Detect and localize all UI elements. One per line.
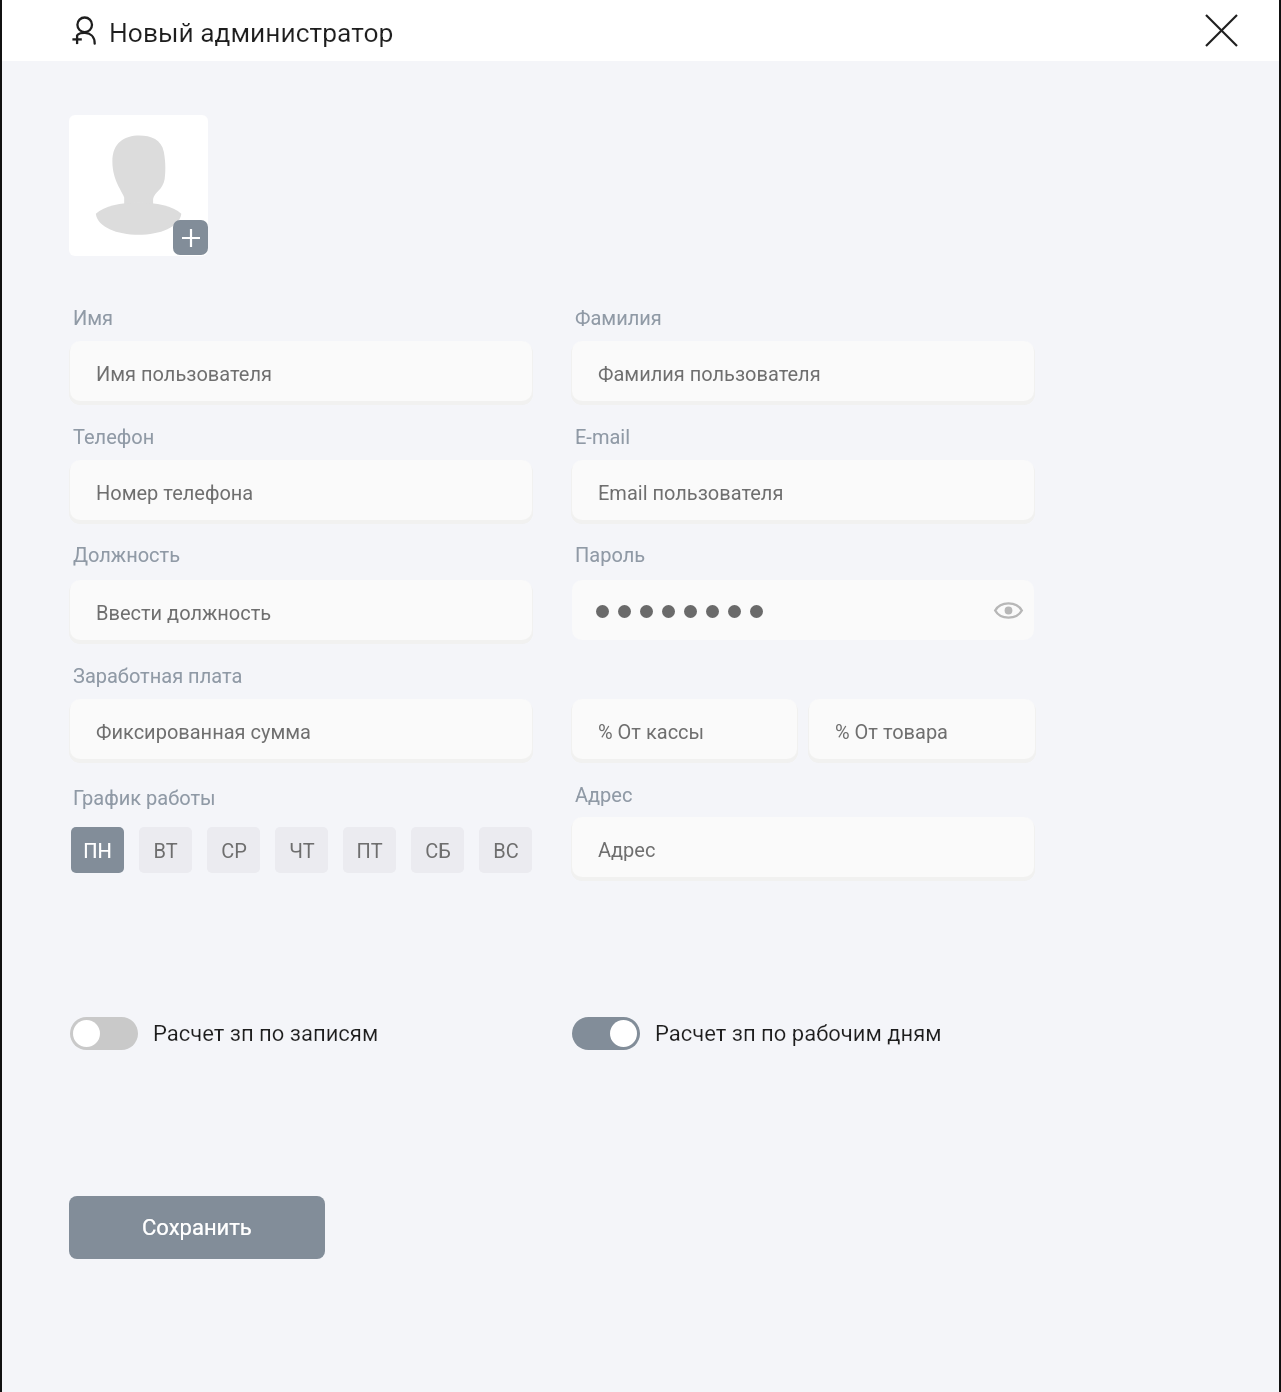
button[interactable]: Расчет зп по рабочим дням [572,1017,942,1050]
button[interactable]: Номер телефона [70,460,532,520]
staticText: Сохранить [142,1215,252,1241]
button[interactable]: % От кассы [572,699,797,759]
staticText: Должность [73,543,181,566]
staticText: СБ [425,839,451,862]
staticText: ВС [493,839,519,862]
staticText: Фамилия [575,306,662,329]
button[interactable]: СБ [411,827,464,873]
staticText: ПН [83,839,112,862]
staticText: Телефон [73,425,155,448]
staticText: % От кассы [598,720,705,743]
staticText: Email пользователя [598,481,784,504]
staticText: Фамилия пользователя [598,362,821,385]
button[interactable]: Адрес [572,817,1034,877]
staticText: E-mail [575,425,631,448]
staticText: СР [221,839,247,862]
staticText: Ввести должность [96,601,272,624]
staticText: Имя [73,306,114,329]
button[interactable]: ПТ [343,827,396,873]
staticText: Заработная плата [73,664,243,687]
staticText: График работы [73,786,216,809]
button[interactable]: Ввести должность [70,580,532,640]
button[interactable]: Email пользователя [572,460,1034,520]
staticText: ПТ [356,839,383,862]
staticText: Адрес [575,783,633,806]
button[interactable]: ПН [71,827,124,873]
button[interactable]: ЧТ [275,827,328,873]
button[interactable]: ВТ [139,827,192,873]
staticText: Адрес [598,838,656,861]
button[interactable]: Фиксированная сумма [70,699,532,759]
button[interactable]: Close [1196,5,1247,56]
button[interactable]: СР [207,827,260,873]
staticText: ЧТ [289,839,315,862]
staticText: Расчет зп по записям [153,1021,379,1047]
staticText: Расчет зп по рабочим дням [655,1021,942,1047]
button[interactable]: Show password [989,591,1028,630]
staticText: Новый администратор [109,18,394,49]
staticText: % От товара [835,720,948,743]
button[interactable]: ВС [479,827,532,873]
button[interactable]: % От товара [809,699,1035,759]
button[interactable]: Расчет зп по записям [70,1017,379,1050]
button[interactable]: Profile photo [69,115,208,256]
staticText: Имя пользователя [96,362,272,385]
staticText: Фиксированная сумма [96,720,311,743]
button[interactable]: Фамилия пользователя [572,341,1034,401]
button[interactable]: Show password [572,580,1034,640]
staticText: Пароль [575,543,646,566]
staticText: ВТ [153,839,178,862]
staticText: Номер телефона [96,481,254,504]
button[interactable]: Имя пользователя [70,341,532,401]
button[interactable]: Add photo [173,220,208,255]
button[interactable]: Сохранить [69,1196,325,1259]
